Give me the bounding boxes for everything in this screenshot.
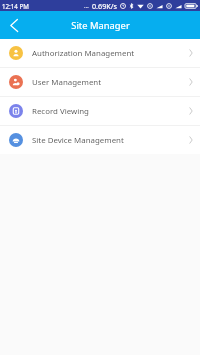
button[interactable]: Authorization Management <box>0 39 200 67</box>
staticText: 12:14 PM <box>2 2 29 10</box>
staticText: … <box>84 2 89 10</box>
staticText: User Management <box>32 77 102 88</box>
button[interactable]: Back <box>0 11 28 39</box>
staticText: Authorization Management <box>32 48 135 59</box>
staticText: Record Viewing <box>32 106 89 117</box>
button[interactable]: Site Device Management <box>0 126 200 154</box>
staticText: 0.69K/s <box>92 1 117 11</box>
staticText: Site Device Management <box>32 135 124 146</box>
button[interactable]: User Management <box>0 68 200 96</box>
staticText: Site Manager <box>71 19 130 32</box>
button[interactable]: Record Viewing <box>0 97 200 125</box>
